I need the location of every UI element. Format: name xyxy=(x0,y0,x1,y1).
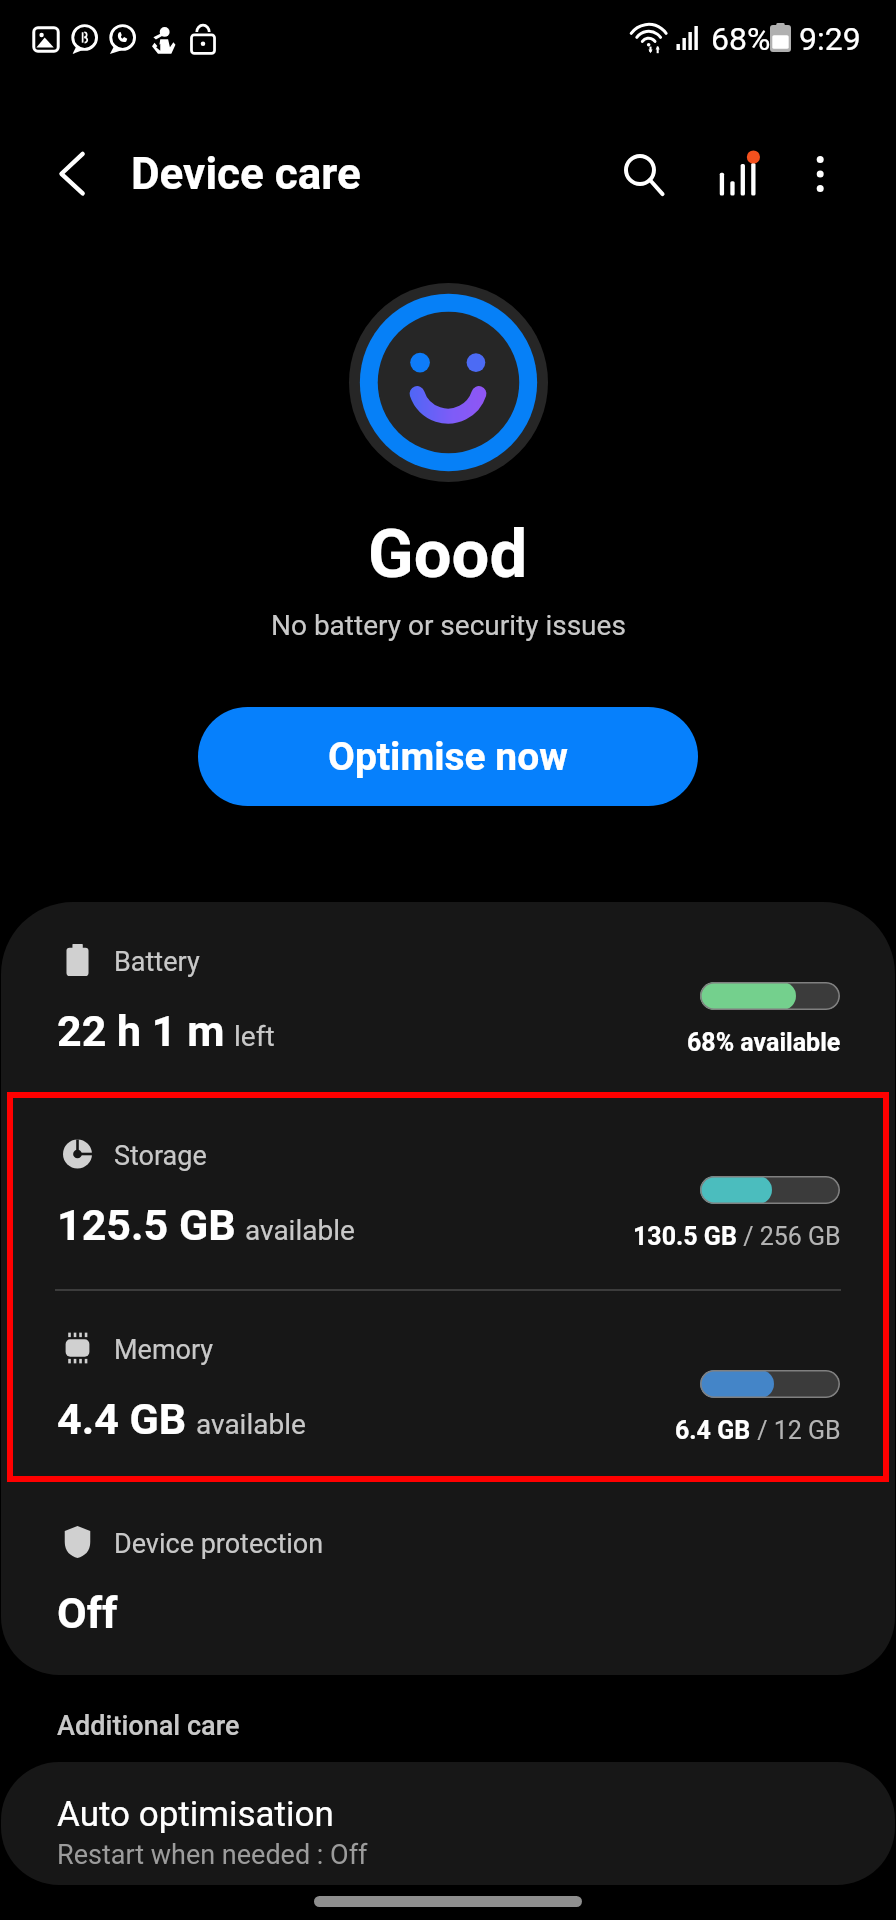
staticText: available xyxy=(196,1408,306,1441)
button[interactable]: Back xyxy=(39,143,103,207)
staticText: / 256 GB xyxy=(737,1222,841,1251)
staticText: 9:29 xyxy=(799,20,861,58)
staticText: Memory xyxy=(114,1334,214,1366)
button[interactable]: Device protection xyxy=(0,1521,896,1709)
staticText: 130.5 GB xyxy=(633,1222,737,1251)
staticText: Off xyxy=(57,1588,118,1638)
staticText: / 12 GB xyxy=(751,1416,841,1445)
button[interactable]: Battery xyxy=(0,939,896,1127)
button[interactable]: Storage xyxy=(0,1133,896,1321)
button[interactable]: More options xyxy=(790,143,854,207)
staticText: 68% available xyxy=(687,1028,841,1057)
button[interactable]: Memory xyxy=(0,1327,896,1515)
staticText: 6.4 GB xyxy=(675,1416,751,1445)
staticText: Auto optimisation xyxy=(57,1794,334,1835)
staticText: 68% xyxy=(711,20,771,58)
staticText: 125.5 GB xyxy=(57,1200,236,1250)
staticText: Device care xyxy=(131,148,361,200)
staticText: available xyxy=(245,1214,355,1247)
button[interactable]: Search xyxy=(610,143,674,207)
staticText: Restart when needed : Off xyxy=(57,1839,368,1871)
staticText: Battery xyxy=(114,946,200,978)
button[interactable]: Optimise now xyxy=(198,707,698,806)
staticText: 4.4 GB xyxy=(57,1394,187,1444)
staticText: left xyxy=(234,1020,275,1053)
staticText: Optimise now xyxy=(328,734,568,780)
staticText: Good xyxy=(368,515,528,594)
button[interactable]: Usage statistics xyxy=(706,143,770,207)
button[interactable] xyxy=(1,1762,895,1885)
staticText: 22 h 1 m xyxy=(57,1006,225,1056)
staticText: Additional care xyxy=(57,1710,240,1742)
staticText: Device protection xyxy=(114,1528,324,1560)
staticText: No battery or security issues xyxy=(271,609,626,642)
staticText: Storage xyxy=(114,1140,207,1172)
